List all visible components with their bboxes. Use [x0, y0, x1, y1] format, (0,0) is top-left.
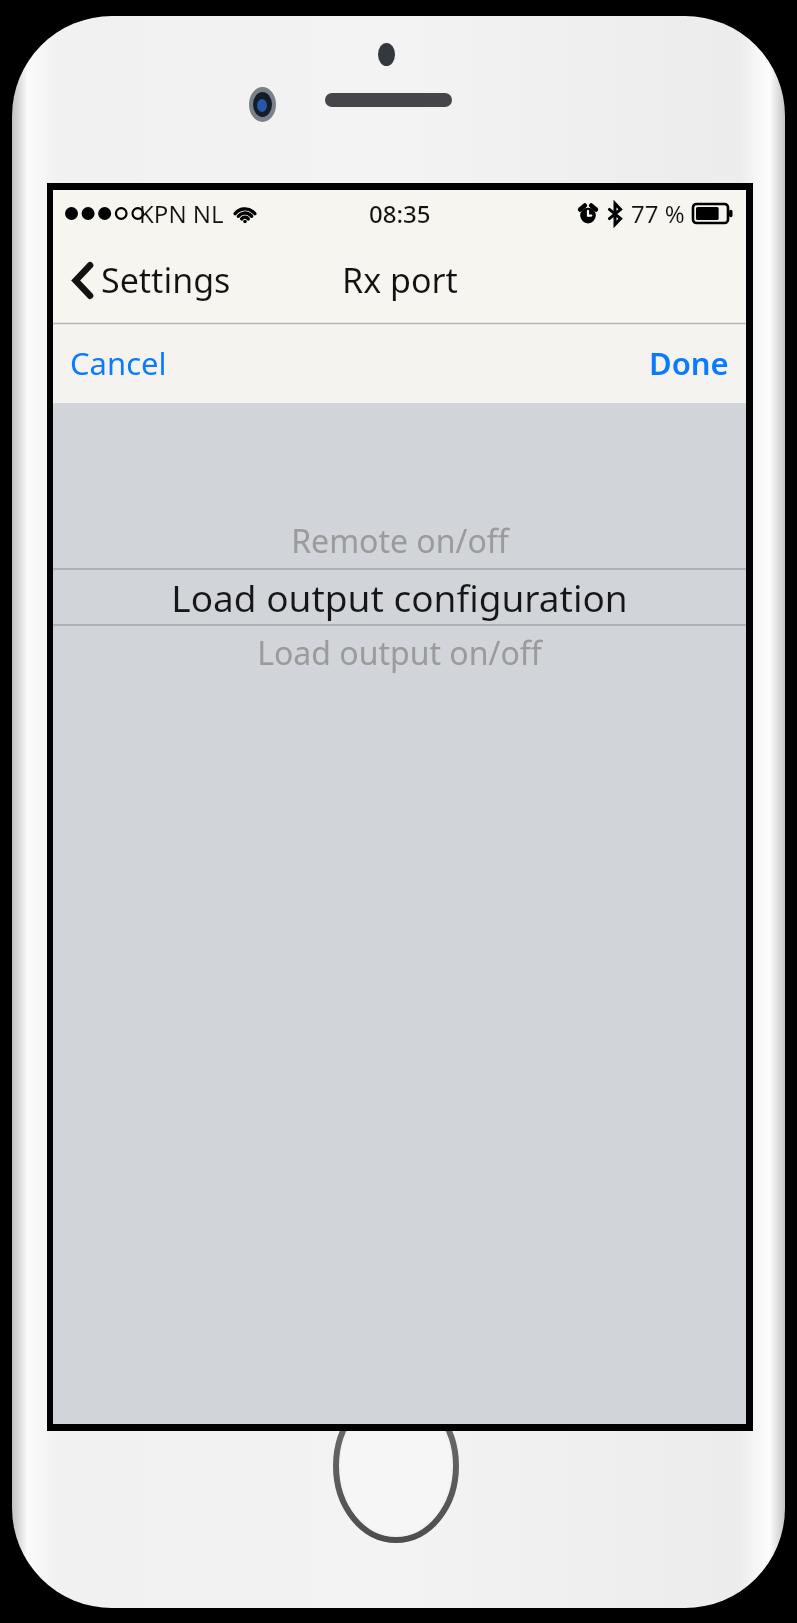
- staticText: KPN NL: [139, 197, 224, 230]
- staticText: 08:35: [369, 197, 431, 230]
- staticText: Remote on/off: [291, 519, 509, 563]
- staticText: 77 %: [631, 197, 685, 230]
- staticText: Done: [649, 342, 729, 384]
- staticText: Load output on/off: [257, 631, 542, 675]
- staticText: Rx port: [342, 257, 458, 303]
- staticText: Cancel: [70, 342, 167, 384]
- button[interactable]: Settings: [67, 249, 237, 311]
- button[interactable]: Done: [632, 323, 746, 403]
- button[interactable]: Remote on/off: [53, 513, 746, 569]
- staticText: Settings: [101, 257, 231, 303]
- staticText: Load output configuration: [171, 572, 628, 622]
- button[interactable]: Cancel: [53, 323, 184, 403]
- button[interactable]: Load output configuration: [53, 569, 746, 625]
- button[interactable]: Load output on/off: [53, 625, 746, 681]
